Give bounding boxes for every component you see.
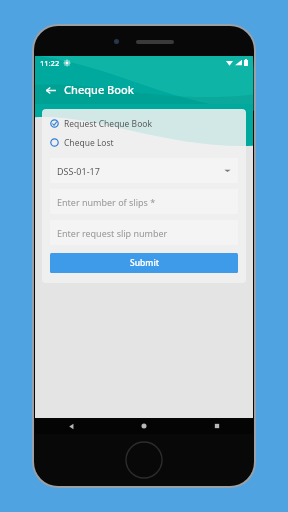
button[interactable]: Back bbox=[40, 80, 60, 100]
staticText: Submit bbox=[130, 257, 159, 269]
staticText: Request Cheque Book bbox=[64, 118, 152, 130]
staticText: Enter request slip number bbox=[57, 227, 168, 239]
staticText: Cheque Lost bbox=[64, 137, 114, 149]
button[interactable]: Back bbox=[35, 418, 107, 434]
staticText: Enter number of slips * bbox=[57, 196, 156, 208]
staticText: DSS-01-17 bbox=[57, 165, 100, 177]
button[interactable]: Cheque Lost bbox=[50, 135, 238, 150]
staticText: Cheque Book bbox=[64, 82, 134, 97]
button[interactable]: Recent apps bbox=[180, 418, 253, 434]
button[interactable]: Enter request slip number bbox=[50, 220, 238, 245]
staticText: 11:22 bbox=[40, 58, 60, 68]
button[interactable]: DSS-01-17 bbox=[50, 158, 238, 183]
button[interactable]: Submit bbox=[50, 253, 238, 273]
button[interactable]: Request Cheque Book bbox=[50, 116, 238, 131]
button[interactable]: Enter number of slips * bbox=[50, 189, 238, 214]
button[interactable]: Home bbox=[107, 418, 180, 434]
